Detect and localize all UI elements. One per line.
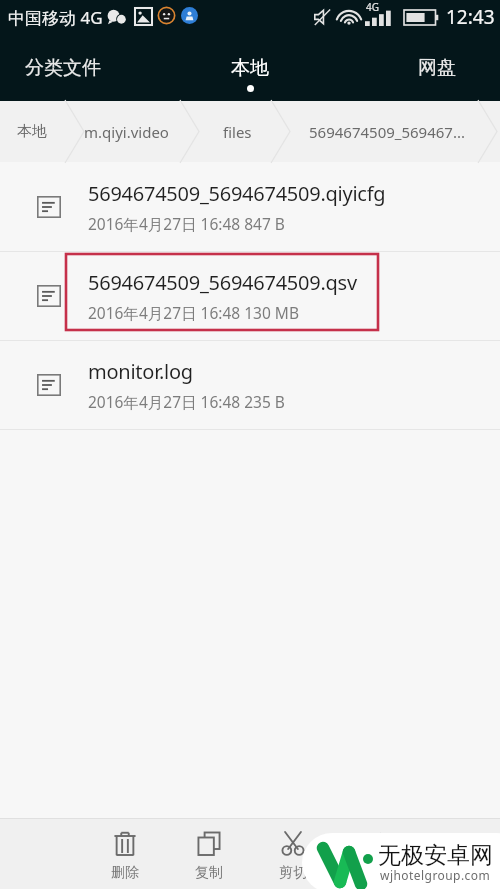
button[interactable]: Delete bbox=[83, 819, 167, 889]
button[interactable]: 本地 bbox=[17, 101, 77, 162]
staticText: 2016年4月27日 16:48 235 B bbox=[88, 391, 285, 412]
staticText: 复制 bbox=[195, 864, 223, 882]
staticText: 本地 bbox=[231, 56, 269, 80]
staticText: m.qiyi.video bbox=[84, 122, 169, 142]
staticText: 中国移动 4G bbox=[8, 6, 103, 29]
button[interactable]: More bbox=[417, 819, 500, 889]
staticText: 网盘 bbox=[418, 56, 456, 80]
staticText: 剪切 bbox=[279, 864, 307, 882]
button[interactable]: monitor.log bbox=[0, 341, 500, 429]
staticText: 删除 bbox=[111, 864, 139, 882]
button[interactable]: 5694674509_5694674509.qiyicfg bbox=[0, 162, 500, 251]
staticText: 重命名 bbox=[355, 864, 397, 882]
staticText: 5694674509_5694674509.qsv bbox=[88, 269, 357, 296]
button[interactable]: m.qiyi.video bbox=[84, 101, 184, 162]
button[interactable]: 网盘 bbox=[374, 33, 500, 101]
button[interactable]: Cut bbox=[251, 819, 334, 889]
button[interactable]: Rename bbox=[334, 819, 417, 889]
button[interactable]: files bbox=[223, 101, 267, 162]
staticText: 更多 bbox=[445, 864, 473, 882]
staticText: 12:43 bbox=[446, 4, 495, 30]
staticText: 2016年4月27日 16:48 847 B bbox=[88, 213, 285, 234]
staticText: 2016年4月27日 16:48 130 MB bbox=[88, 302, 300, 323]
button[interactable]: Copy bbox=[167, 819, 251, 889]
staticText: 本地 bbox=[17, 122, 47, 141]
staticText: monitor.log bbox=[88, 358, 193, 385]
button[interactable]: 5694674509_5694674509.qsv bbox=[0, 252, 500, 340]
staticText: 5694674509_5694674509.qiyicfg bbox=[88, 180, 386, 207]
staticText: files bbox=[223, 122, 252, 142]
staticText: 无极安卓网 bbox=[378, 841, 493, 870]
staticText: wjhotelgroup.com bbox=[380, 867, 491, 883]
button[interactable]: 本地 bbox=[187, 33, 313, 101]
button[interactable]: 5694674509_569467... bbox=[309, 101, 489, 162]
staticText: 分类文件 bbox=[25, 56, 101, 80]
staticText: 4G bbox=[366, 0, 379, 14]
staticText: 5694674509_569467... bbox=[309, 122, 466, 142]
button[interactable]: 分类文件 bbox=[0, 33, 125, 101]
